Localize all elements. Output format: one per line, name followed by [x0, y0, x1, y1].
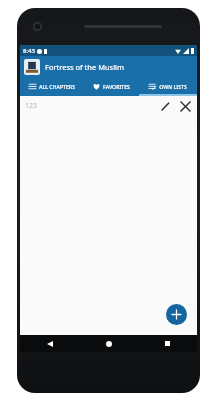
staticText: 8:43: [23, 47, 35, 55]
button[interactable]: FAVORITES: [84, 78, 139, 94]
button[interactable]: Delete list: [179, 100, 192, 113]
staticText: ALL CHAPTERS: [39, 83, 75, 90]
button[interactable]: ALL CHAPTERS: [20, 78, 84, 94]
staticText: OWN LISTS: [159, 83, 187, 90]
staticText: FAVORITES: [103, 83, 130, 90]
button[interactable]: 123: [20, 96, 197, 116]
button[interactable]: Home: [79, 335, 138, 352]
button[interactable]: Recent apps: [138, 335, 197, 352]
staticText: 123: [25, 101, 38, 111]
button[interactable]: Add new list: [166, 304, 187, 325]
button[interactable]: Back: [20, 335, 79, 352]
button[interactable]: Edit list: [159, 100, 172, 113]
button[interactable]: OWN LISTS: [139, 78, 197, 94]
staticText: Fortress of the Muslim: [45, 62, 125, 72]
